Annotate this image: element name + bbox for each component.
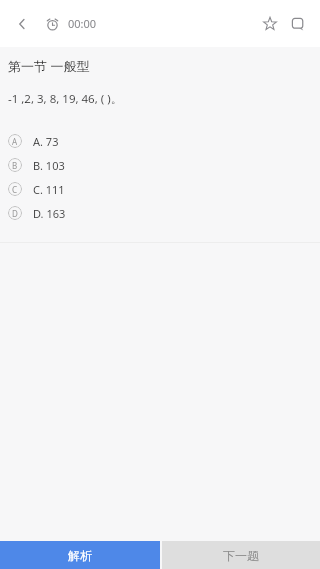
staticText: -1 ,2, 3, 8, 19, 46, ( )。 [8,91,123,107]
staticText: 第一节 一般型 [8,57,90,75]
staticText: B [12,160,18,171]
button[interactable]: Feedback [284,10,312,38]
button[interactable]: Back [8,10,36,38]
button[interactable]: B [0,153,320,177]
button[interactable]: 解析 [0,541,160,569]
staticText: A [12,136,18,147]
staticText: D. 163 [33,206,66,221]
staticText: A. 73 [33,134,59,149]
button[interactable]: A [0,129,320,153]
button[interactable]: 下一题 [162,541,320,569]
staticText: D [12,208,18,219]
button[interactable]: Timer [40,12,64,36]
staticText: C [12,184,18,195]
button[interactable]: C [0,177,320,201]
staticText: 解析 [68,548,92,563]
button[interactable]: D [0,201,320,225]
staticText: C. 111 [33,182,65,197]
staticText: B. 103 [33,158,65,173]
button[interactable]: Favorite [256,10,284,38]
staticText: 00:00 [68,16,97,31]
staticText: 下一题 [223,548,259,563]
